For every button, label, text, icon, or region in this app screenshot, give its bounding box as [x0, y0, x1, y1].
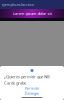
- staticText: Permitir: [24, 85, 39, 91]
- button[interactable]: Permitir: [0, 86, 64, 91]
- button[interactable]: Denegar: [0, 91, 64, 96]
- staticText: Lorem ipsum dolor sit: [12, 11, 51, 16]
- staticText: ¿Quieres permitir que NB Cards grabe: [4, 74, 50, 86]
- staticText: Denegar: [24, 90, 39, 96]
- staticText: ejemplo.es/acceso: [1, 2, 33, 7]
